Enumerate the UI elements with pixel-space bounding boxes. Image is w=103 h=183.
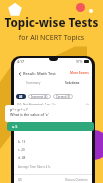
staticText: c. 20 <box>18 148 25 152</box>
staticText: d. 48 <box>18 156 26 160</box>
staticText: Summary <box>26 81 41 85</box>
staticText: Solutions <box>65 81 80 85</box>
button[interactable]: All <box>16 94 26 99</box>
button[interactable]: Back <box>16 70 23 77</box>
staticText: Topic-wise Tests <box>0 15 103 31</box>
button[interactable]: Incorrect (4) <box>28 94 51 99</box>
staticText: b. 13 <box>18 140 26 144</box>
button[interactable]: Summary <box>14 79 53 86</box>
staticText: a. 5 <box>12 125 18 129</box>
button[interactable]: Correct (3) <box>53 94 73 99</box>
staticText: 4:17 <box>17 59 25 64</box>
staticText: Discuss Question <box>65 178 88 182</box>
staticText: Q5 <box>18 178 23 182</box>
staticText: Correct (3) <box>56 95 70 99</box>
button[interactable]: a. 5 <box>7 122 94 131</box>
staticText: Average Time Taken: 41s <box>18 165 51 169</box>
staticText: 97% <box>76 60 83 64</box>
button[interactable]: Solutions <box>53 79 92 86</box>
staticText: What is the value of 'x' <box>10 112 49 117</box>
staticText: Incorrect (4) <box>31 95 48 99</box>
staticText: Q4 · Not Attempted · 1 m · 2 s <box>17 103 56 107</box>
staticText: for All NCERT Topics <box>0 33 103 43</box>
staticText: p³ ÷ p⁻⁴ = ? <box>10 107 28 112</box>
staticText: All <box>19 95 23 99</box>
button[interactable]: More Exams <box>70 71 89 75</box>
staticText: Result: Math Test <box>23 71 56 76</box>
